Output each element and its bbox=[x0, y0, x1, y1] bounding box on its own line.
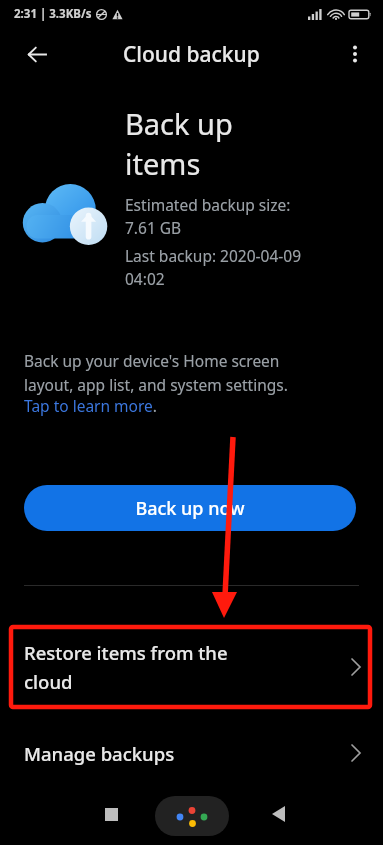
staticText: Manage backups bbox=[24, 741, 175, 766]
button[interactable]: More options bbox=[332, 31, 378, 77]
staticText: Restore items from the cloud bbox=[24, 640, 228, 694]
staticText: Tap to learn more. bbox=[24, 395, 157, 416]
button[interactable]: Back up now bbox=[24, 485, 356, 531]
staticText: Back up your device's Home screen layout… bbox=[24, 350, 288, 395]
button[interactable]: Manage backups bbox=[0, 723, 383, 783]
staticText: Back up items bbox=[125, 104, 233, 184]
button[interactable]: Recent apps bbox=[90, 793, 132, 835]
staticText: Last backup: 2020-04-09 04:02 bbox=[125, 245, 302, 290]
staticText: Cloud backup bbox=[123, 40, 260, 69]
button[interactable]: Tap to learn more. bbox=[24, 395, 157, 416]
button[interactable]: Back bbox=[13, 30, 61, 78]
button[interactable]: Back bbox=[257, 793, 299, 835]
button[interactable]: Google Assistant bbox=[155, 796, 229, 836]
staticText: Back up now bbox=[135, 496, 245, 521]
staticText: 2:31 | 3.3KB/s bbox=[14, 6, 92, 22]
staticText: Estimated backup size: 7.61 GB bbox=[125, 194, 291, 239]
button[interactable]: Restore items from the cloud bbox=[0, 627, 383, 707]
